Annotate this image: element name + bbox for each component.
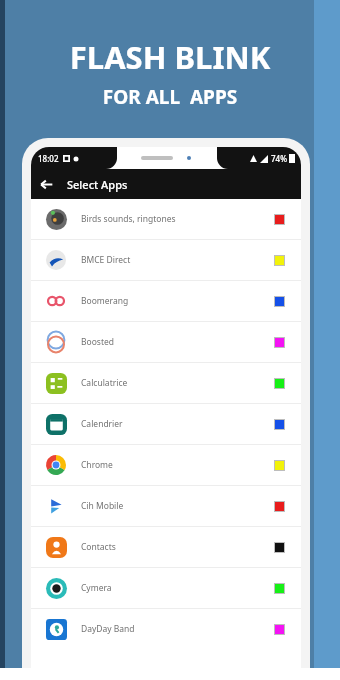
button[interactable]: Back xyxy=(31,169,61,199)
staticText: BMCE Direct xyxy=(81,254,131,266)
button[interactable]: Cymera xyxy=(31,568,301,608)
staticText: Chrome xyxy=(81,459,113,471)
button[interactable]: Boomerang xyxy=(31,281,301,321)
staticText: Boomerang xyxy=(81,295,129,307)
staticText: DayDay Band xyxy=(81,623,135,635)
staticText: Calendrier xyxy=(81,418,123,430)
staticText: FLASH BLINK xyxy=(0,36,340,78)
staticText: Calculatrice xyxy=(81,377,128,389)
button[interactable]: Boosted xyxy=(31,322,301,362)
staticText: FOR ALL APPS xyxy=(0,84,340,110)
staticText: Boosted xyxy=(81,336,114,348)
staticText: Select Apps xyxy=(67,177,128,192)
staticText: Contacts xyxy=(81,541,116,553)
button[interactable]: Cih Mobile xyxy=(31,486,301,526)
button[interactable]: BMCE Direct xyxy=(31,240,301,280)
button[interactable]: Chrome xyxy=(31,445,301,485)
button[interactable]: Calendrier xyxy=(31,404,301,444)
staticText: Birds sounds, ringtones xyxy=(81,213,176,225)
staticText: Cih Mobile xyxy=(81,500,124,512)
staticText: Cymera xyxy=(81,582,112,594)
button[interactable]: Calculatrice xyxy=(31,363,301,403)
staticText: 74% xyxy=(271,153,287,164)
staticText: 18:02 xyxy=(38,153,59,164)
button[interactable]: Birds sounds, ringtones xyxy=(31,199,301,239)
button[interactable]: DayDay Band xyxy=(31,609,301,649)
button[interactable]: Contacts xyxy=(31,527,301,567)
